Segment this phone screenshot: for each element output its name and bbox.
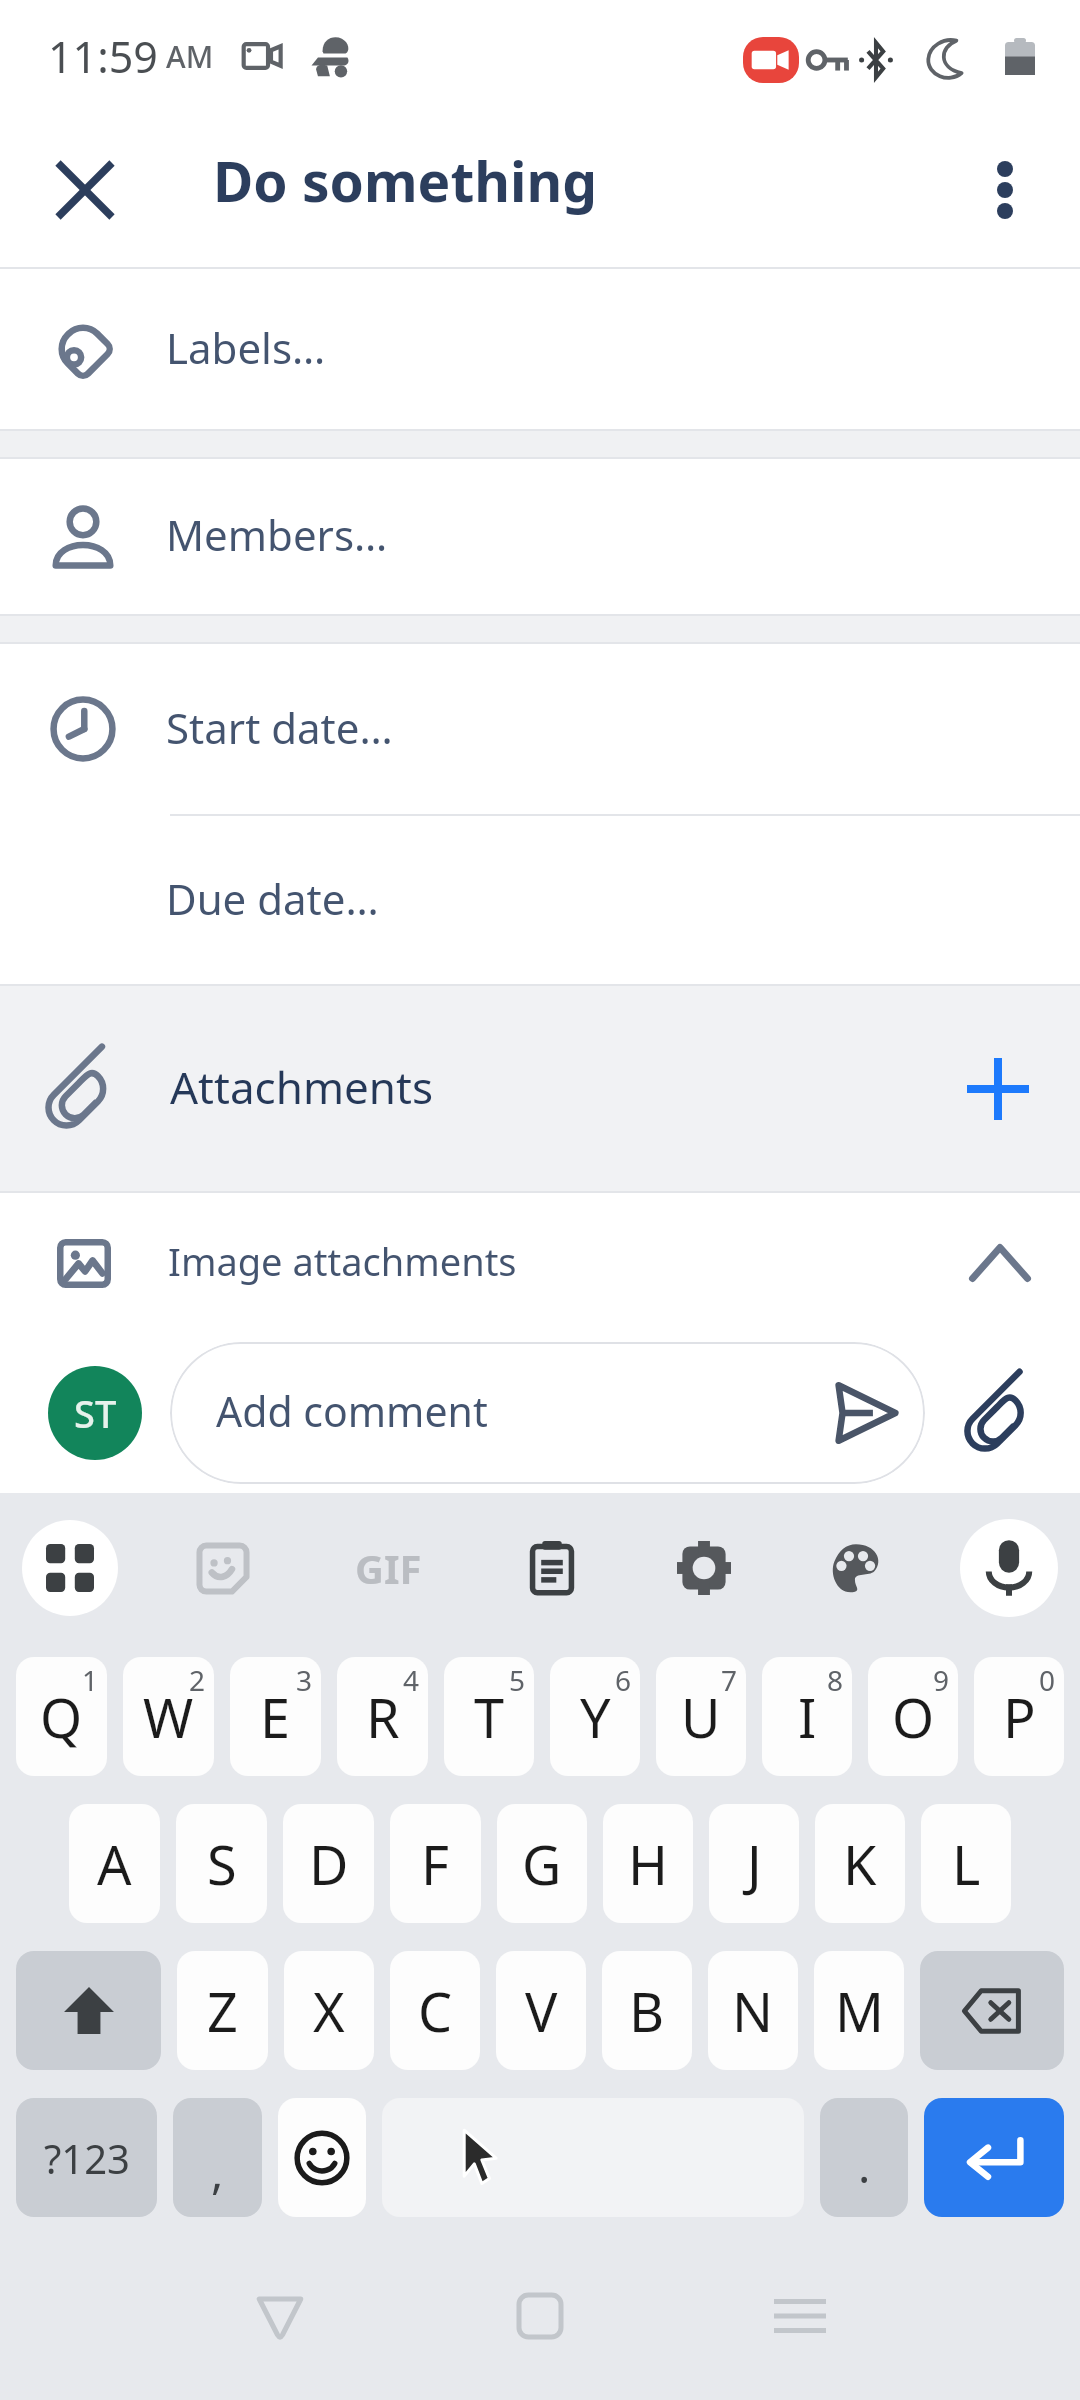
- button[interactable]: C: [390, 1951, 480, 2070]
- button[interactable]: B: [602, 1951, 692, 2070]
- button[interactable]: N: [708, 1951, 798, 2070]
- button[interactable]: V: [496, 1951, 586, 2070]
- staticText: 6: [615, 1661, 632, 1699]
- button[interactable]: Labels…: [0, 269, 1080, 429]
- staticText: O: [892, 1680, 935, 1754]
- staticText: I: [798, 1680, 817, 1754]
- button[interactable]: Members…: [0, 459, 1080, 614]
- staticText: T: [474, 1680, 505, 1754]
- button[interactable]: Add comment: [170, 1342, 925, 1484]
- button[interactable]: Settings: [656, 1520, 752, 1616]
- button[interactable]: Emoji: [278, 2098, 366, 2217]
- staticText: GIF: [355, 1541, 422, 1595]
- button[interactable]: O: [868, 1657, 958, 1776]
- staticText: Y: [580, 1680, 611, 1754]
- button[interactable]: P: [974, 1657, 1064, 1776]
- staticText: 4: [403, 1661, 420, 1699]
- button[interactable]: Stickers: [175, 1520, 271, 1616]
- button[interactable]: Collapse: [920, 1193, 1080, 1333]
- staticText: Start date…: [166, 699, 393, 756]
- button[interactable]: Attach file: [925, 1333, 1080, 1493]
- button[interactable]: I: [762, 1657, 852, 1776]
- button[interactable]: M: [814, 1951, 904, 2070]
- button[interactable]: Y: [550, 1657, 640, 1776]
- button[interactable]: G: [497, 1804, 587, 1923]
- button[interactable]: Due date…: [0, 816, 1080, 984]
- staticText: V: [525, 1974, 558, 2048]
- button[interactable]: Theme: [808, 1520, 904, 1616]
- button[interactable]: Space: [382, 2098, 804, 2217]
- button[interactable]: Shift: [16, 1951, 161, 2070]
- button[interactable]: Z: [177, 1951, 268, 2070]
- button[interactable]: W: [123, 1657, 214, 1776]
- staticText: D: [309, 1827, 349, 1901]
- button[interactable]: E: [230, 1657, 321, 1776]
- button[interactable]: .: [820, 2098, 908, 2217]
- staticText: 0: [1039, 1661, 1056, 1699]
- button[interactable]: T: [444, 1657, 534, 1776]
- staticText: 5: [509, 1661, 526, 1699]
- button[interactable]: J: [709, 1804, 799, 1923]
- staticText: 1: [82, 1661, 99, 1699]
- staticText: C: [418, 1974, 453, 2048]
- staticText: K: [843, 1827, 877, 1901]
- button[interactable]: S: [176, 1804, 267, 1923]
- button[interactable]: Send: [805, 1342, 925, 1484]
- button[interactable]: Backspace: [920, 1951, 1064, 2070]
- staticText: Labels…: [166, 319, 326, 376]
- button[interactable]: ,: [173, 2098, 262, 2217]
- staticText: .: [858, 2134, 871, 2197]
- button[interactable]: K: [815, 1804, 905, 1923]
- button[interactable]: Recents: [670, 2231, 930, 2400]
- staticText: Z: [207, 1974, 238, 2048]
- staticText: A: [97, 1827, 132, 1901]
- staticText: 7: [721, 1661, 738, 1699]
- button[interactable]: More options: [930, 112, 1080, 267]
- button[interactable]: Image attachments: [0, 1193, 1080, 1333]
- staticText: Due date…: [166, 870, 379, 927]
- staticText: U: [681, 1680, 721, 1754]
- staticText: ,: [211, 2140, 224, 2203]
- staticText: ?123: [44, 2131, 130, 2185]
- staticText: E: [260, 1680, 291, 1754]
- button[interactable]: Apps: [22, 1520, 118, 1616]
- button[interactable]: Q: [16, 1657, 107, 1776]
- staticText: Attachments: [170, 1057, 433, 1117]
- staticText: AM: [166, 36, 214, 77]
- staticText: H: [628, 1827, 669, 1901]
- button[interactable]: Close: [0, 112, 170, 267]
- staticText: 3: [296, 1661, 313, 1699]
- button[interactable]: X: [284, 1951, 374, 2070]
- staticText: W: [143, 1680, 194, 1754]
- staticText: Image attachments: [168, 1235, 517, 1287]
- button[interactable]: Start date…: [0, 644, 1080, 814]
- button[interactable]: Voice input: [960, 1519, 1058, 1617]
- staticText: F: [421, 1827, 450, 1901]
- button[interactable]: ?123: [16, 2098, 157, 2217]
- staticText: N: [732, 1974, 774, 2048]
- button[interactable]: A: [69, 1804, 160, 1923]
- button[interactable]: ST: [48, 1366, 142, 1460]
- staticText: 9: [933, 1661, 950, 1699]
- button[interactable]: Home: [410, 2231, 670, 2400]
- staticText: 11:59: [48, 27, 158, 86]
- button[interactable]: H: [603, 1804, 693, 1923]
- button[interactable]: Clipboard: [504, 1520, 600, 1616]
- button[interactable]: R: [337, 1657, 428, 1776]
- staticText: S: [207, 1827, 237, 1901]
- button[interactable]: Enter: [924, 2098, 1064, 2217]
- button[interactable]: U: [656, 1657, 746, 1776]
- staticText: B: [629, 1974, 665, 2048]
- button[interactable]: F: [390, 1804, 481, 1923]
- button[interactable]: L: [921, 1804, 1011, 1923]
- button[interactable]: Attachments: [0, 986, 1080, 1191]
- button[interactable]: Back: [150, 2231, 410, 2400]
- button[interactable]: GIF: [328, 1520, 448, 1616]
- staticText: 8: [827, 1661, 844, 1699]
- staticText: Members…: [166, 506, 388, 563]
- staticText: J: [747, 1827, 762, 1901]
- button[interactable]: D: [283, 1804, 374, 1923]
- button[interactable]: Add attachment: [915, 986, 1080, 1191]
- staticText: L: [952, 1827, 981, 1901]
- staticText: X: [313, 1974, 345, 2048]
